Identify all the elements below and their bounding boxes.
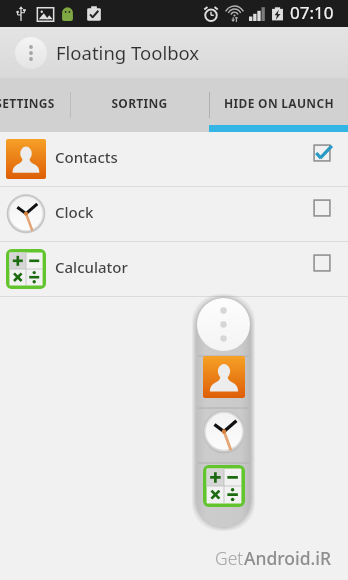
button[interactable]: Toolbox menu bbox=[197, 298, 250, 351]
button[interactable]: Contacts bbox=[203, 356, 245, 398]
button[interactable]: Floating Toolbox bbox=[0, 27, 348, 78]
staticText: Clock bbox=[55, 202, 94, 222]
staticText: Calculator bbox=[55, 257, 128, 277]
button[interactable]: Contacts bbox=[0, 132, 348, 186]
staticText: Get bbox=[215, 546, 244, 570]
button[interactable]: HIDE ON LAUNCH bbox=[209, 78, 348, 132]
staticText: Floating Toolbox bbox=[56, 40, 200, 65]
staticText: Android.iR bbox=[244, 546, 332, 570]
staticText: HIDE ON LAUNCH bbox=[224, 95, 334, 111]
button[interactable]: Calculator bbox=[0, 242, 348, 296]
staticText: SORTING bbox=[111, 95, 168, 111]
button[interactable]: Calculator bbox=[203, 465, 245, 507]
button[interactable]: Clock bbox=[202, 410, 246, 454]
button[interactable]: SETTINGS bbox=[0, 78, 70, 132]
button[interactable]: SORTING bbox=[70, 78, 209, 132]
button[interactable]: Clock bbox=[0, 187, 348, 241]
staticText: 07:10 bbox=[290, 1, 334, 24]
staticText: Contacts bbox=[55, 147, 118, 167]
staticText: SETTINGS bbox=[0, 95, 55, 111]
